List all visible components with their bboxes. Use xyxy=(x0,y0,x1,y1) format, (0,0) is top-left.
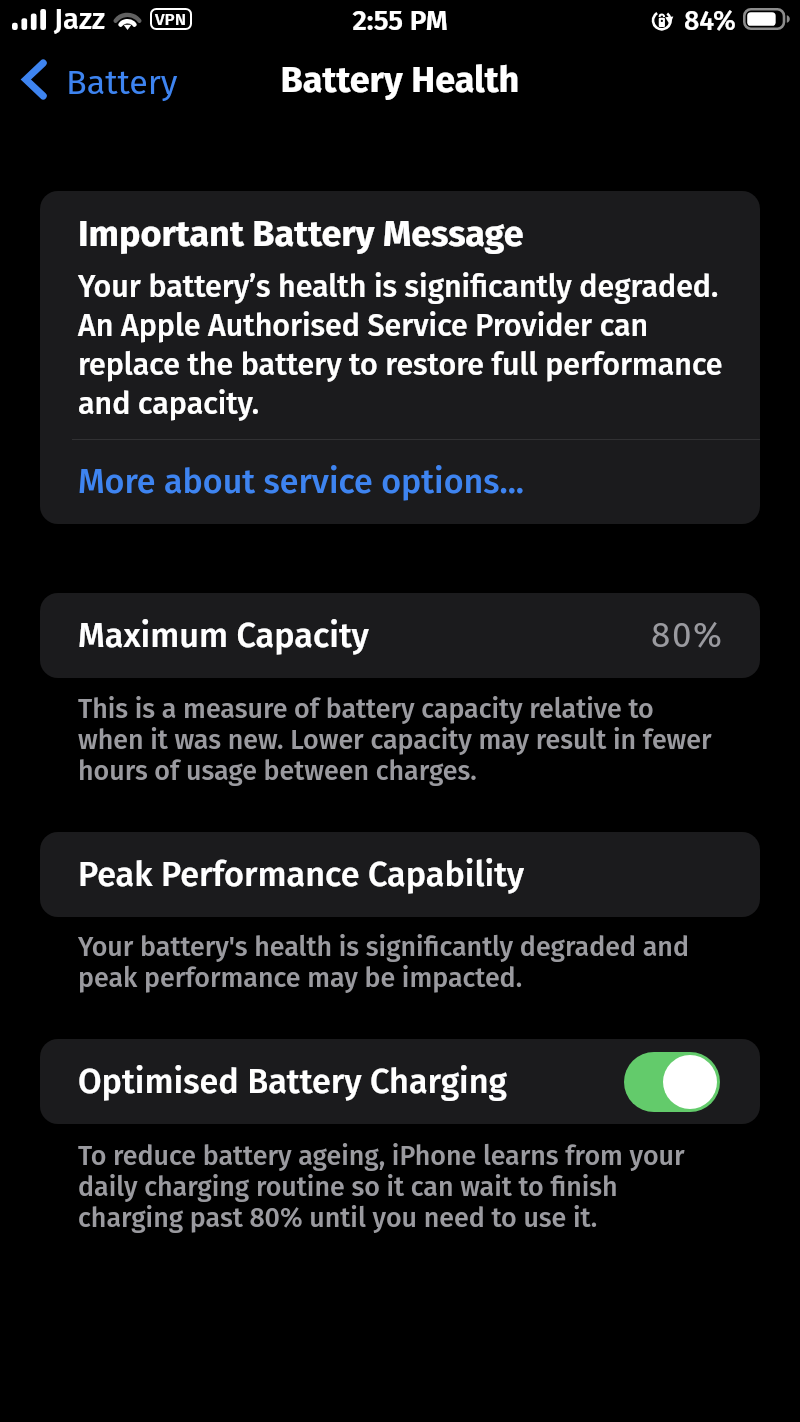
staticText: Jazz xyxy=(54,4,105,36)
staticText: Maximum Capacity xyxy=(78,616,369,656)
button[interactable]: More about service options... xyxy=(78,459,578,509)
staticText: Battery xyxy=(66,60,178,104)
staticText: VPN xyxy=(155,10,187,29)
button[interactable]: Maximum Capacity xyxy=(40,593,760,678)
staticText: Your battery’s health is significantly d… xyxy=(78,267,733,423)
button[interactable]: Optimised Battery Charging xyxy=(624,1052,720,1112)
staticText: Peak Performance Capability xyxy=(78,855,525,895)
button[interactable]: Battery xyxy=(14,56,194,106)
staticText: To reduce battery ageing, iPhone learns … xyxy=(78,1141,719,1234)
staticText: Important Battery Message xyxy=(78,213,524,255)
other: Rotation lock xyxy=(652,10,676,31)
staticText: Your battery's health is significantly d… xyxy=(78,932,719,994)
button[interactable]: Peak Performance Capability xyxy=(40,832,760,917)
staticText: 2:55 PM xyxy=(0,5,800,37)
staticText: 84% xyxy=(684,5,736,37)
button[interactable]: Optimised Battery Charging xyxy=(40,1039,760,1124)
staticText: Battery Health xyxy=(0,58,800,102)
staticText: Optimised Battery Charging xyxy=(78,1062,507,1102)
staticText: This is a measure of battery capacity re… xyxy=(78,694,719,787)
staticText: 80% xyxy=(651,616,724,656)
